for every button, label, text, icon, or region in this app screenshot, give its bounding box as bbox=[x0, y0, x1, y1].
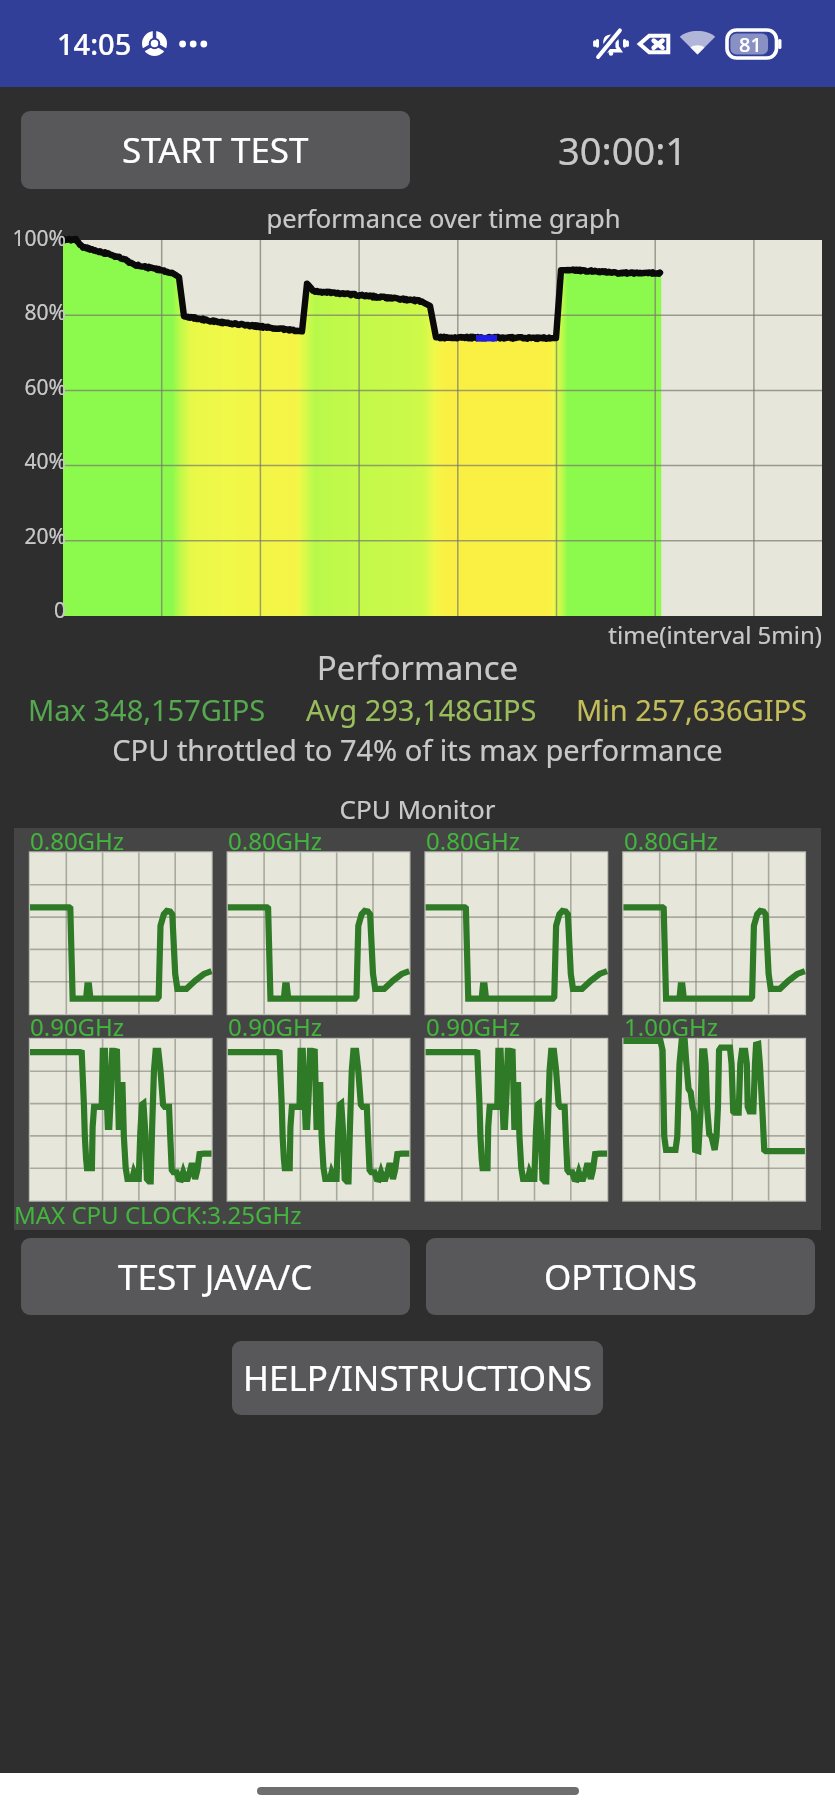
staticText: 100% bbox=[12, 224, 66, 246]
staticText: 1.00GHz bbox=[624, 1010, 719, 1043]
staticText: time(interval 5min) bbox=[0, 618, 822, 651]
staticText: OPTIONS bbox=[544, 1253, 697, 1301]
button[interactable]: START TEST bbox=[21, 111, 410, 189]
button[interactable]: OPTIONS bbox=[426, 1238, 815, 1315]
staticText: 60% bbox=[24, 373, 66, 395]
staticText: TEST JAVA/C bbox=[118, 1253, 313, 1301]
staticText: Min 257,636GIPS bbox=[576, 690, 807, 729]
staticText: 40% bbox=[24, 447, 66, 469]
button[interactable]: HELP/INSTRUCTIONS bbox=[232, 1341, 603, 1415]
staticText: 0.80GHz bbox=[426, 824, 521, 857]
staticText: 80% bbox=[24, 298, 66, 320]
staticText: performance over time graph bbox=[52, 201, 835, 236]
other: No SIM card bbox=[637, 0, 673, 87]
other: More notifications bbox=[179, 0, 207, 87]
staticText: 0.80GHz bbox=[228, 824, 323, 857]
staticText: 0 bbox=[53, 596, 66, 618]
staticText: 0.80GHz bbox=[624, 824, 719, 857]
staticText: 30:00:1 bbox=[558, 124, 688, 176]
staticText: Performance bbox=[0, 645, 835, 690]
staticText: CPU Monitor bbox=[0, 791, 835, 826]
other: Wi-Fi signal bbox=[679, 0, 717, 87]
other: Battery 81 percent bbox=[727, 0, 783, 87]
staticText: 0.90GHz bbox=[228, 1010, 323, 1043]
staticText: 20% bbox=[24, 522, 66, 544]
staticText: 0.80GHz bbox=[30, 824, 125, 857]
staticText: 0.90GHz bbox=[426, 1010, 521, 1043]
staticText: MAX CPU CLOCK:3.25GHz bbox=[14, 1198, 302, 1230]
staticText: CPU throttled to 74% of its max performa… bbox=[0, 730, 835, 769]
staticText: Max 348,157GIPS bbox=[28, 690, 266, 729]
staticText: 0.90GHz bbox=[30, 1010, 125, 1043]
staticText: Avg 293,148GIPS bbox=[306, 690, 537, 729]
button[interactable]: TEST JAVA/C bbox=[21, 1238, 410, 1315]
staticText: 81 bbox=[739, 31, 762, 58]
staticText: START TEST bbox=[122, 126, 309, 174]
other: Chrome notification bbox=[142, 0, 168, 87]
staticText: HELP/INSTRUCTIONS bbox=[243, 1354, 593, 1402]
other: Ringer muted bbox=[594, 0, 630, 87]
staticText: 14:05 bbox=[57, 24, 132, 63]
